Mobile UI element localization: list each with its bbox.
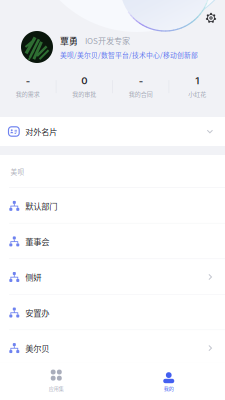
staticText: - bbox=[26, 75, 30, 87]
button[interactable]: 董事会 bbox=[0, 224, 225, 259]
staticText: 0 bbox=[81, 75, 87, 87]
staticText: 对外名片 bbox=[25, 126, 57, 137]
staticText: 应用集 bbox=[49, 385, 64, 392]
staticText: 董事会 bbox=[25, 235, 49, 247]
staticText: 美呗 bbox=[10, 167, 24, 176]
staticText: 我的合同 bbox=[129, 90, 153, 98]
staticText: 默认部门 bbox=[25, 200, 57, 212]
staticText: 美尔贝 bbox=[25, 342, 49, 354]
staticText: IOS开发专家 bbox=[85, 35, 130, 46]
button[interactable]: 应用集 bbox=[0, 370, 112, 400]
staticText: 美呗/美尔贝/数智平台/技术中心/移动创新部 bbox=[60, 50, 198, 60]
button[interactable]: 默认部门 bbox=[0, 188, 225, 224]
button[interactable]: 我的 bbox=[112, 370, 225, 400]
staticText: 安置办 bbox=[25, 306, 49, 318]
button[interactable]: 1 bbox=[169, 75, 225, 98]
button[interactable]: - bbox=[0, 75, 56, 98]
button[interactable]: 0 bbox=[56, 75, 112, 98]
button[interactable]: 侧妍 bbox=[0, 259, 225, 295]
staticText: - bbox=[139, 75, 143, 87]
staticText: 我的需求 bbox=[16, 90, 40, 98]
button[interactable]: 设置 bbox=[199, 6, 223, 30]
staticText: 我的审批 bbox=[72, 90, 96, 98]
button[interactable]: - bbox=[113, 75, 169, 98]
staticText: 1 bbox=[195, 75, 199, 87]
button[interactable]: 对外名片 bbox=[0, 117, 225, 146]
staticText: 小红花 bbox=[188, 90, 206, 98]
staticText: 覃勇 bbox=[60, 34, 78, 47]
staticText: 我的 bbox=[164, 385, 174, 392]
button[interactable]: 美尔贝 bbox=[0, 330, 225, 366]
button[interactable]: 安置办 bbox=[0, 295, 225, 330]
staticText: 侧妍 bbox=[25, 271, 41, 283]
